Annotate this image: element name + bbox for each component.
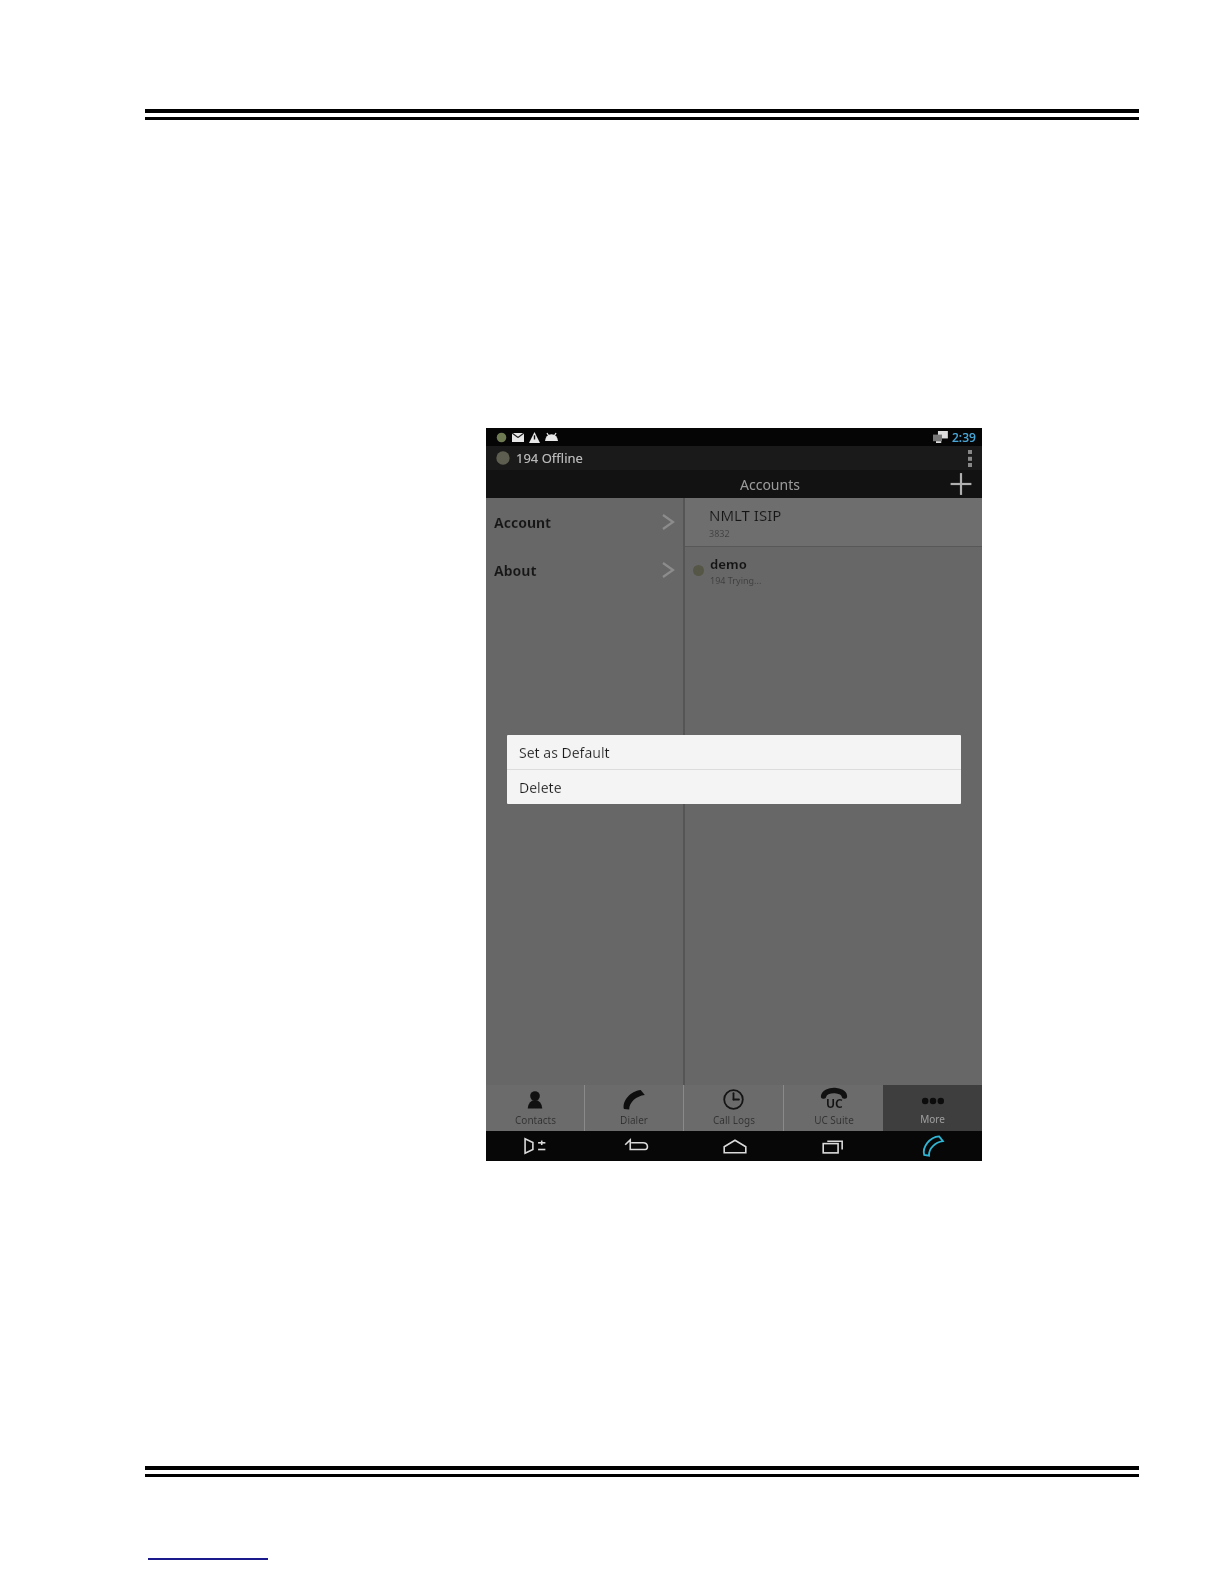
- button[interactable]: Phone: [883, 1131, 982, 1161]
- staticText: Set as Default: [519, 743, 610, 762]
- button[interactable]: NMLT ISIP: [685, 498, 982, 546]
- staticText: Call Logs: [713, 1113, 755, 1127]
- staticText: 3832: [709, 527, 730, 539]
- button[interactable]: Contacts: [486, 1085, 584, 1131]
- staticText: About: [494, 561, 537, 580]
- staticText: Account: [494, 513, 552, 532]
- staticText: UC: [826, 1095, 843, 1111]
- button[interactable]: Home: [685, 1131, 784, 1161]
- button[interactable]: Delete: [507, 770, 961, 804]
- button[interactable]: About: [486, 546, 683, 594]
- staticText: More: [920, 1112, 945, 1126]
- staticText: 2:39: [952, 429, 976, 445]
- staticText: Accounts: [740, 475, 800, 494]
- button[interactable]: More options: [968, 450, 972, 467]
- button[interactable]: Account: [486, 498, 683, 546]
- staticText: demo: [710, 555, 747, 573]
- staticText: Dialer: [620, 1113, 648, 1127]
- button[interactable]: Recents: [784, 1131, 883, 1161]
- button[interactable]: Add account: [948, 471, 974, 497]
- staticText: UC Suite: [814, 1113, 854, 1127]
- button[interactable]: More: [883, 1085, 982, 1131]
- staticText: Delete: [519, 778, 562, 797]
- staticText: NMLT ISIP: [709, 505, 782, 525]
- staticText: 194 Trying...: [710, 574, 762, 586]
- button[interactable]: UC: [784, 1085, 883, 1131]
- button[interactable]: Set as Default: [507, 735, 961, 769]
- button[interactable]: Call Logs: [684, 1085, 783, 1131]
- staticText: 194 Offline: [516, 449, 583, 467]
- button[interactable]: Volume: [486, 1131, 586, 1161]
- staticText: Contacts: [515, 1113, 556, 1127]
- button[interactable]: demo: [685, 547, 982, 593]
- button[interactable]: Back: [586, 1131, 685, 1161]
- button[interactable]: Dialer: [585, 1085, 683, 1131]
